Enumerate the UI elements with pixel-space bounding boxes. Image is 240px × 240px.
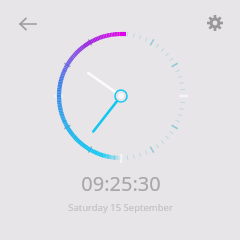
button[interactable]: Settings [200, 8, 230, 38]
staticText: Saturday 15 September [68, 201, 173, 214]
button[interactable] [0, 0, 240, 240]
button[interactable]: Back [12, 8, 44, 40]
button[interactable]: 09:25:30 [68, 170, 173, 214]
staticText: 09:25:30 [81, 170, 161, 197]
